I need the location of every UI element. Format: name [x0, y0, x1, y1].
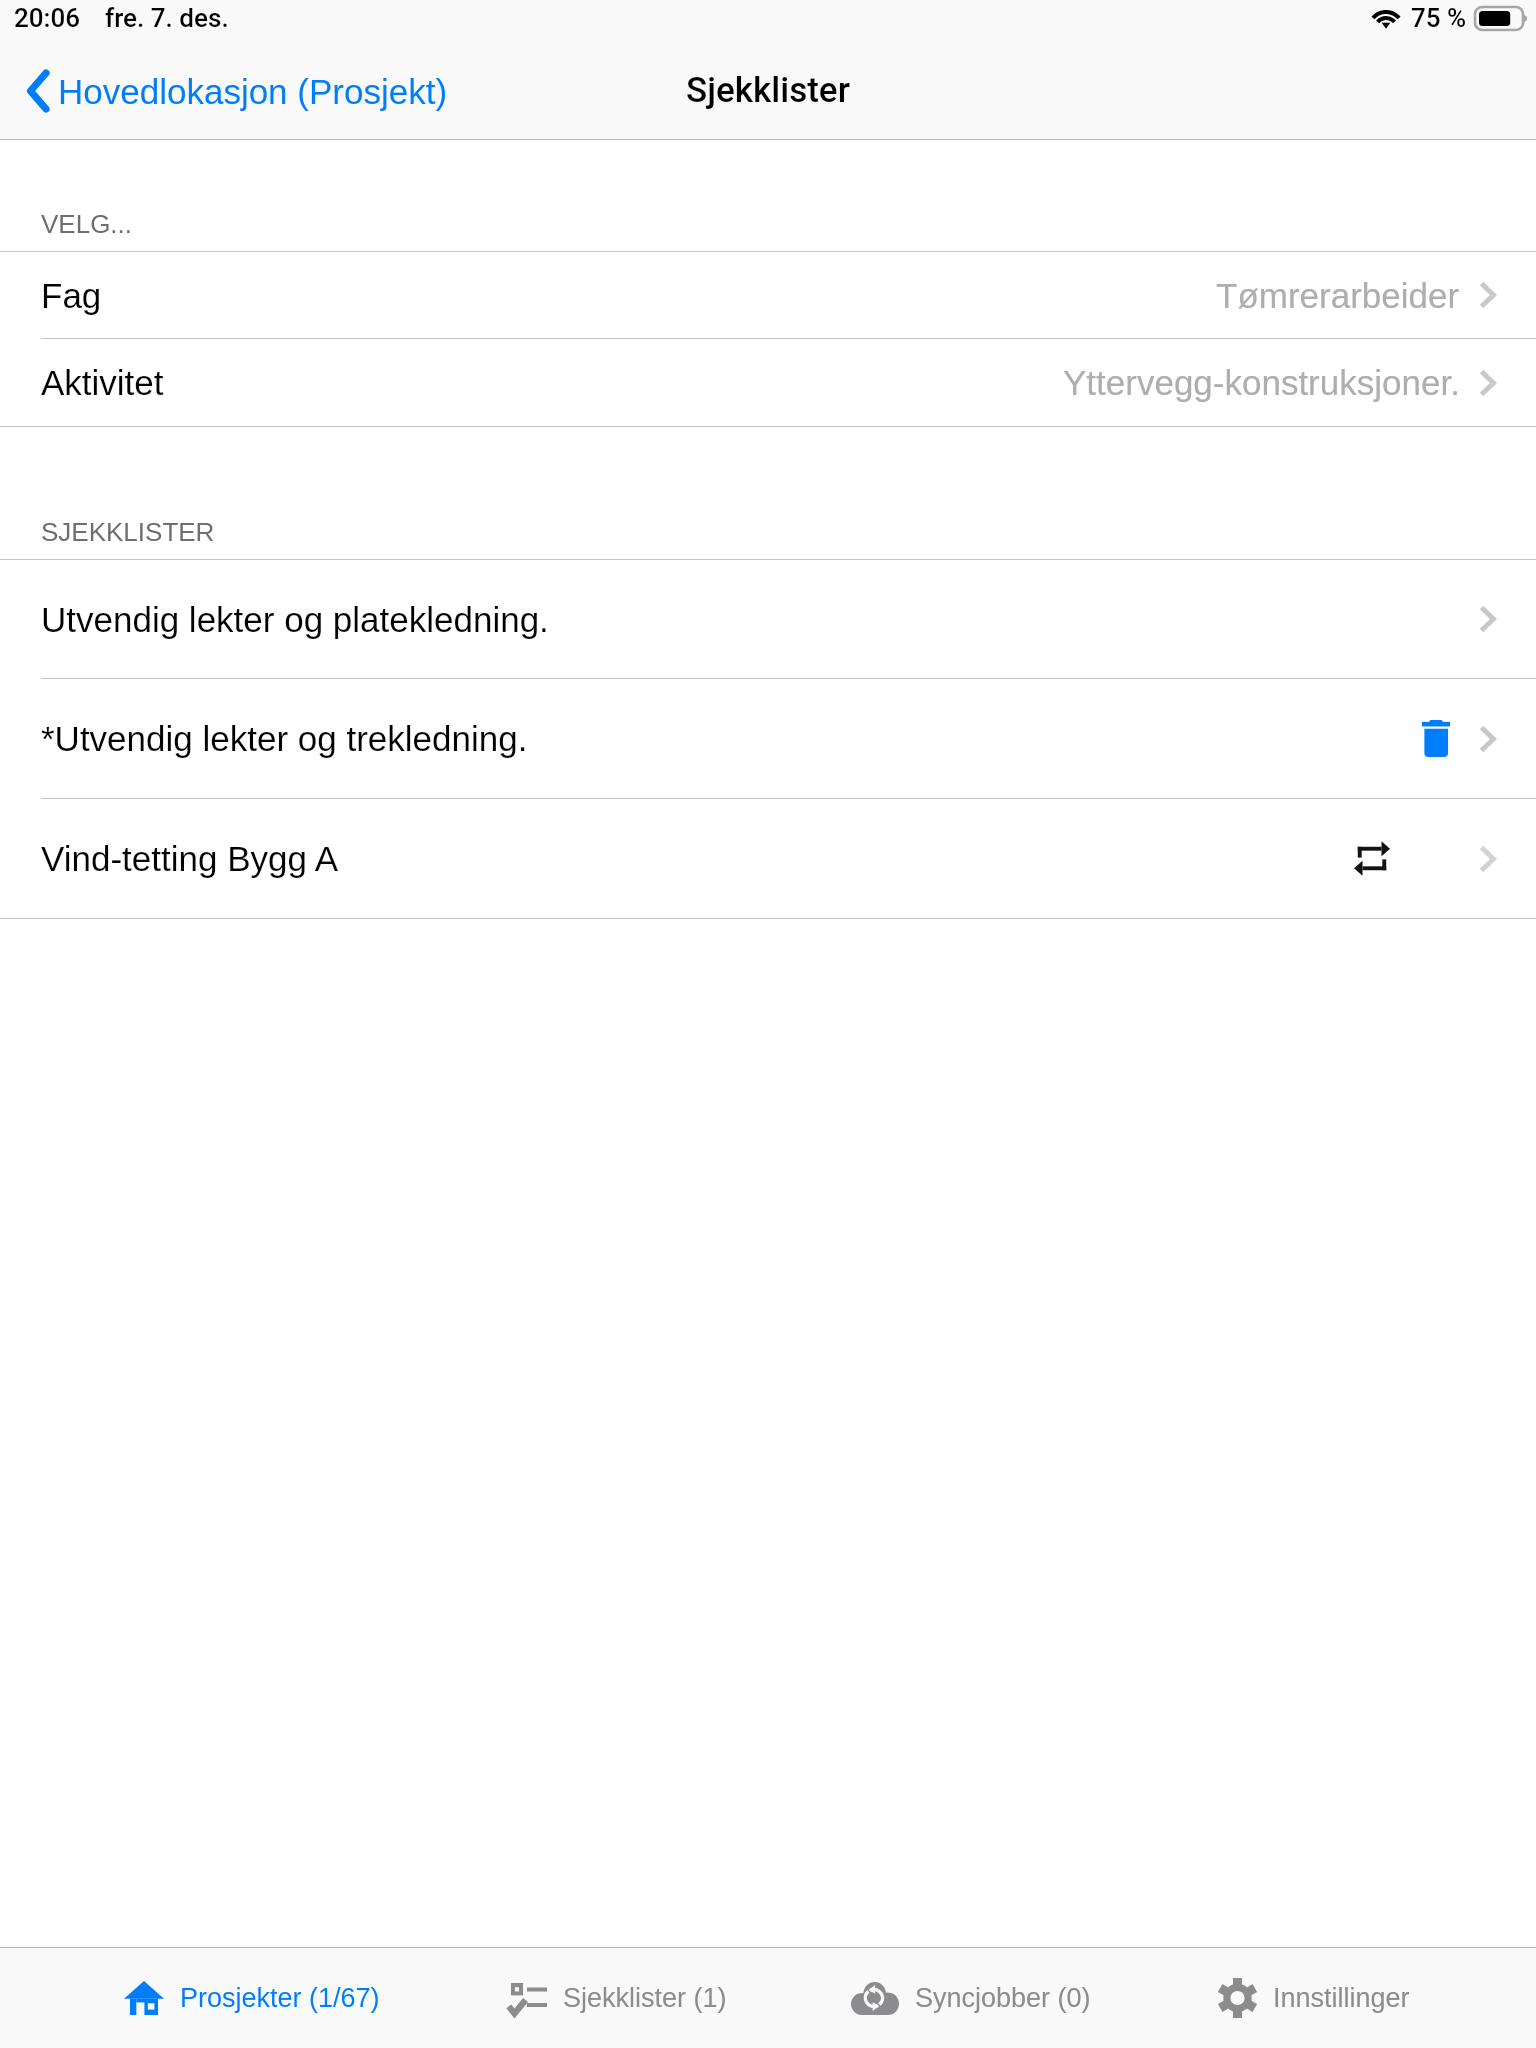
staticText: *Utvendig lekter og trekledning.: [41, 719, 528, 758]
staticText: Innstillinger: [1273, 1983, 1410, 2013]
button[interactable]: Fag: [0, 252, 1536, 338]
button[interactable]: Vind-tetting Bygg A: [0, 799, 1536, 918]
staticText: Yttervegg-konstruksjoner.: [1063, 363, 1460, 402]
staticText: Sjekklister (1): [563, 1983, 727, 2013]
staticText: fre. 7. des.: [105, 3, 229, 33]
button[interactable]: *Utvendig lekter og trekledning.: [0, 679, 1536, 798]
button[interactable]: Sjekklister (1): [484, 1948, 751, 2048]
staticText: Syncjobber (0): [915, 1983, 1091, 2013]
button[interactable]: Utvendig lekter og platekledning.: [0, 560, 1536, 678]
button[interactable]: Hovedlokasjon (Prosjekt): [0, 50, 468, 140]
button[interactable]: Innstillinger: [1194, 1948, 1434, 2048]
button[interactable]: Syncjobber (0): [827, 1948, 1115, 2048]
staticText: Tømrerarbeider: [1216, 276, 1460, 315]
staticText: 20:06: [14, 3, 81, 33]
staticText: Vind-tetting Bygg A: [41, 839, 339, 878]
staticText: VELG...: [41, 209, 133, 238]
button[interactable]: Prosjekter (1/67): [100, 1948, 404, 2048]
button[interactable]: Slett: [1422, 720, 1450, 757]
staticText: Fag: [41, 276, 102, 315]
button[interactable]: Gjentakende: [1354, 841, 1390, 876]
staticText: Utvendig lekter og platekledning.: [41, 600, 549, 639]
staticText: Sjekklister: [686, 70, 850, 111]
staticText: SJEKKLISTER: [41, 517, 215, 546]
staticText: Hovedlokasjon (Prosjekt): [58, 72, 448, 111]
staticText: 75 %: [1411, 3, 1467, 33]
staticText: Aktivitet: [41, 363, 164, 402]
staticText: Prosjekter (1/67): [180, 1983, 380, 2013]
button[interactable]: Aktivitet: [0, 339, 1536, 426]
